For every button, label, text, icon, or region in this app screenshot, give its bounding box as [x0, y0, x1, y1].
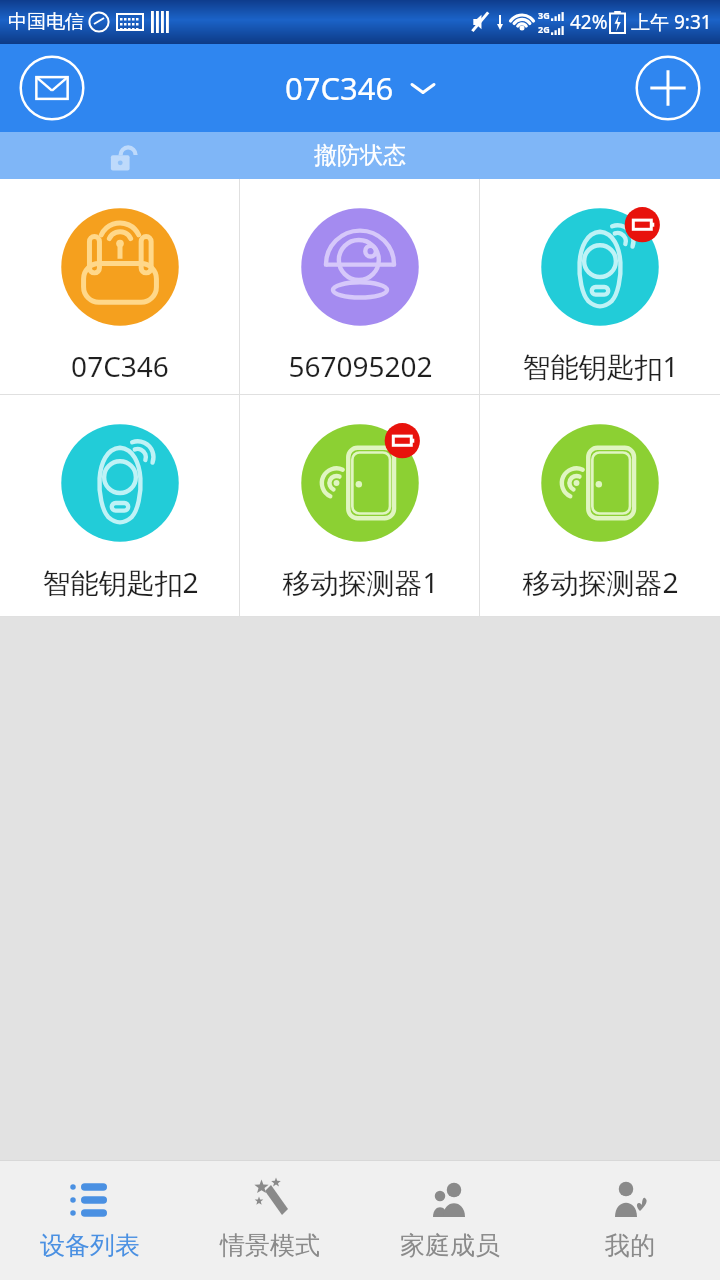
- staticText: 家庭成员: [400, 1230, 500, 1261]
- staticText: 情景模式: [220, 1230, 320, 1261]
- button[interactable]: Add device: [634, 54, 702, 122]
- button[interactable]: 智能钥匙扣1: [480, 179, 720, 394]
- staticText: 移动探测器2: [522, 563, 679, 601]
- button[interactable]: 我的: [540, 1160, 720, 1280]
- staticText: 我的: [605, 1230, 655, 1261]
- button[interactable]: 设备列表: [0, 1160, 180, 1280]
- staticText: 中国电信: [8, 10, 84, 34]
- button[interactable]: 移动探测器1: [240, 395, 480, 616]
- button[interactable]: 07C346: [0, 179, 240, 394]
- staticText: 移动探测器1: [282, 563, 439, 601]
- button[interactable]: 智能钥匙扣2: [0, 395, 240, 616]
- button[interactable]: 567095202: [240, 179, 480, 394]
- button[interactable]: 移动探测器2: [480, 395, 720, 616]
- button[interactable]: 家庭成员: [360, 1160, 540, 1280]
- button[interactable]: Messages: [18, 54, 86, 122]
- staticText: 2G: [538, 23, 550, 35]
- staticText: 智能钥匙扣1: [522, 347, 679, 385]
- staticText: 上午 9:31: [631, 9, 712, 35]
- staticText: 567095202: [288, 347, 433, 385]
- staticText: 撤防状态: [314, 141, 406, 170]
- staticText: 3G: [538, 9, 550, 21]
- staticText: 智能钥匙扣2: [42, 563, 199, 601]
- button[interactable]: 撤防状态: [0, 132, 720, 179]
- staticText: 设备列表: [40, 1230, 140, 1261]
- button[interactable]: 情景模式: [180, 1160, 360, 1280]
- button[interactable]: 07C346: [285, 67, 436, 109]
- staticText: 42%: [570, 9, 608, 35]
- staticText: 07C346: [71, 347, 169, 385]
- staticText: 07C346: [285, 67, 394, 109]
